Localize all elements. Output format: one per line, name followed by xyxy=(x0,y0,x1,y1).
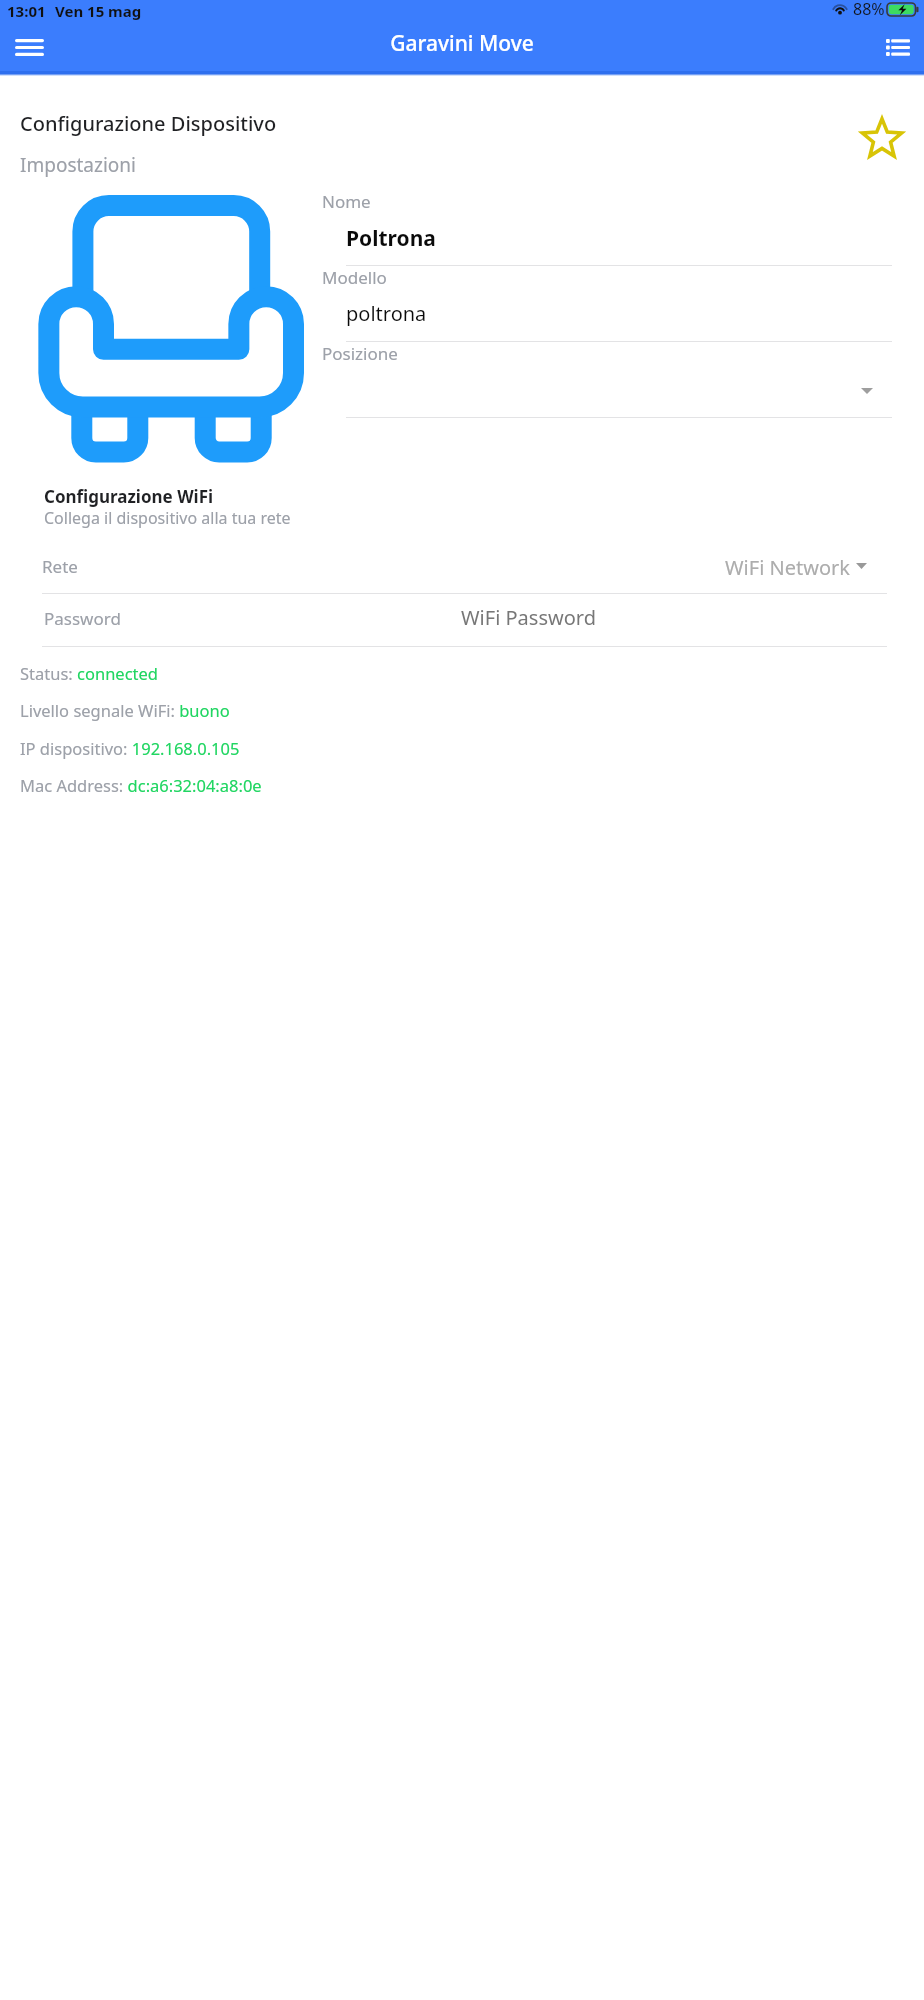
button[interactable]: Menu xyxy=(0,22,58,74)
button[interactable]: Rete xyxy=(42,546,882,593)
staticText: Nome xyxy=(322,190,371,213)
staticText: Modello xyxy=(322,266,387,289)
button[interactable]: Preferito xyxy=(856,117,908,163)
staticText: Password xyxy=(44,607,121,630)
staticText: Posizione xyxy=(322,342,398,365)
button[interactable]: Password xyxy=(42,598,882,645)
staticText: WiFi Network xyxy=(725,554,850,581)
staticText: 88% xyxy=(853,0,885,20)
staticText: Poltrona xyxy=(346,224,436,253)
staticText: WiFi Password xyxy=(461,604,596,631)
staticText: Ven 15 mag xyxy=(55,1,142,21)
staticText: IP dispositivo: 192.168.0.105 xyxy=(20,737,240,759)
staticText: 13:01 xyxy=(7,1,46,21)
staticText: Garavini Move xyxy=(0,29,924,58)
button[interactable]: Posizione xyxy=(845,371,889,411)
staticText: Rete xyxy=(42,555,78,578)
staticText: Livello segnale WiFi: buono xyxy=(20,699,230,721)
button[interactable]: Elenco xyxy=(869,22,924,74)
staticText: Status: connected xyxy=(20,662,158,684)
staticText: Collega il dispositivo alla tua rete xyxy=(44,507,291,529)
staticText: Configurazione WiFi xyxy=(44,485,214,508)
staticText: Impostazioni xyxy=(20,152,136,178)
staticText: Mac Address: dc:a6:32:04:a8:0e xyxy=(20,774,262,796)
staticText: Configurazione Dispositivo xyxy=(20,110,277,137)
staticText: poltrona xyxy=(346,300,427,327)
